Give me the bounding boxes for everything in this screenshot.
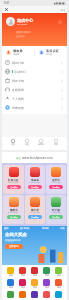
staticText: 游戏 <box>45 286 49 289</box>
staticText: 个人资料 <box>12 97 24 101</box>
staticText: 购物车 <box>38 143 44 146</box>
button[interactable]: 游戏 <box>31 291 38 300</box>
button[interactable]: More <box>60 8 65 12</box>
button[interactable]: 个人资料 <box>2 94 67 103</box>
button[interactable]: 我的卡包 <box>2 76 67 85</box>
button[interactable]: 游戏 <box>55 291 62 300</box>
staticText: 立即领取 <box>10 216 18 218</box>
staticText: 必玩榜 <box>42 227 49 230</box>
staticText: 立即领取 <box>31 216 39 218</box>
button[interactable]: 糖果乐 <box>3 195 24 224</box>
staticText: 活动中心 <box>14 70 26 74</box>
staticText: 5.2万人在玩 <box>8 181 19 184</box>
button[interactable]: 红包大会 <box>3 165 24 194</box>
staticText: www.huishanzan.com <box>22 156 53 160</box>
staticText: 已完成 <box>46 53 52 56</box>
button[interactable]: 首页 <box>10 137 16 146</box>
staticText: 游戏 <box>9 274 13 277</box>
staticText: 首页 <box>11 143 15 146</box>
button[interactable]: 游戏 <box>31 267 38 279</box>
staticText: 系统设置 <box>12 106 24 110</box>
staticText: 在线客服 <box>12 88 24 92</box>
staticText: 我的订单 <box>12 61 24 65</box>
button[interactable]: 幸运兔 <box>25 165 45 194</box>
button[interactable]: 活动中心 <box>2 67 67 76</box>
button[interactable]: 游戏 <box>43 291 50 300</box>
staticText: 实名认证 <box>46 49 59 53</box>
staticText: 9:41 <box>4 1 10 5</box>
staticText: 游戏 <box>33 286 37 289</box>
staticText: 会员特权 <box>16 35 25 38</box>
button[interactable]: 实名认证 <box>35 46 67 58</box>
staticText: 金币坊 <box>52 178 60 181</box>
button[interactable]: 游戏 <box>7 291 14 300</box>
button[interactable]: 分类 <box>60 227 65 230</box>
staticText: 游戏 <box>45 274 49 277</box>
button[interactable]: 游戏 <box>7 267 14 279</box>
button[interactable]: 在线客服 <box>2 85 67 94</box>
button[interactable]: 游戏 <box>7 279 14 291</box>
button[interactable]: 游戏 <box>43 267 50 279</box>
button[interactable]: 热门游戏 <box>20 227 30 230</box>
button[interactable]: Close <box>4 7 9 12</box>
button[interactable]: 立即领取 <box>7 185 21 189</box>
staticText: 我的卡包 <box>12 79 24 83</box>
button[interactable]: 立即参与 <box>5 244 23 249</box>
staticText: 2.4万人在玩 <box>8 211 19 214</box>
button[interactable]: 立即领取 <box>7 215 21 219</box>
button[interactable]: 系统设置 <box>2 103 67 112</box>
button[interactable]: 购物车 <box>37 137 45 146</box>
staticText: 推荐 <box>4 227 9 230</box>
staticText: 立即领取 <box>52 186 60 188</box>
staticText: 分类 <box>60 227 65 230</box>
staticText: 叶子森 <box>52 208 60 211</box>
button[interactable]: 领取券 <box>2 46 34 58</box>
button[interactable]: 立即领取 <box>28 185 42 189</box>
staticText: 游戏 <box>21 274 25 277</box>
staticText: 立即领取 <box>31 186 39 188</box>
staticText: 红包大会 <box>8 178 19 181</box>
staticText: 全民大奖金 <box>5 232 27 238</box>
staticText: 游戏 <box>33 274 37 277</box>
staticText: 糖果乐 <box>10 208 18 211</box>
staticText: 游戏中心 <box>17 18 33 23</box>
staticText: 领取券 <box>13 49 23 53</box>
button[interactable]: 必玩榜 <box>42 227 49 230</box>
button[interactable]: 我的订单 <box>2 58 67 67</box>
button[interactable]: 游戏 <box>19 279 26 291</box>
button[interactable]: 立即领取 <box>49 185 63 189</box>
staticText: 领取专属福利 <box>16 31 31 34</box>
button[interactable]: 立即领取 <box>28 215 42 219</box>
button[interactable]: 分类 <box>24 137 30 146</box>
staticText: ID: 10086 <box>17 23 27 26</box>
button[interactable]: 游戏 <box>55 279 62 291</box>
button[interactable]: 游戏 <box>55 267 62 279</box>
staticText: 1.9万人在玩 <box>51 211 62 214</box>
staticText: 橙子岸 <box>31 208 39 211</box>
staticText: 8.1万人在玩 <box>51 181 62 184</box>
button[interactable]: 游戏 <box>19 267 26 279</box>
staticText: 我的 <box>54 143 58 146</box>
staticText: 幸运兔 <box>31 178 39 181</box>
staticText: 游戏 <box>21 286 25 289</box>
button[interactable]: 游戏 <box>43 279 50 291</box>
staticText: 活动火热进行中 <box>5 239 21 242</box>
staticText: 游戏 <box>57 286 61 289</box>
staticText: 热门游戏 <box>20 227 30 230</box>
button[interactable]: 游戏 <box>19 291 26 300</box>
staticText: 4.6万人在玩 <box>30 211 41 214</box>
button[interactable]: 橙子岸 <box>25 195 45 224</box>
staticText: 立即领取 <box>52 216 60 218</box>
button[interactable]: 金币坊 <box>46 165 66 194</box>
staticText: 安全 <box>16 157 21 160</box>
button[interactable]: 我的 <box>53 137 59 146</box>
button[interactable]: 推荐 <box>4 227 9 230</box>
button[interactable]: 立即领取 <box>49 215 63 219</box>
staticText: 游戏 <box>57 274 61 277</box>
staticText: 游戏 <box>9 286 13 289</box>
button[interactable]: 叶子森 <box>46 195 66 224</box>
staticText: 分类 <box>25 143 29 146</box>
staticText: 立即领取 <box>10 186 18 188</box>
staticText: 3.8万人在玩 <box>30 181 41 184</box>
button[interactable]: 游戏 <box>31 279 38 291</box>
